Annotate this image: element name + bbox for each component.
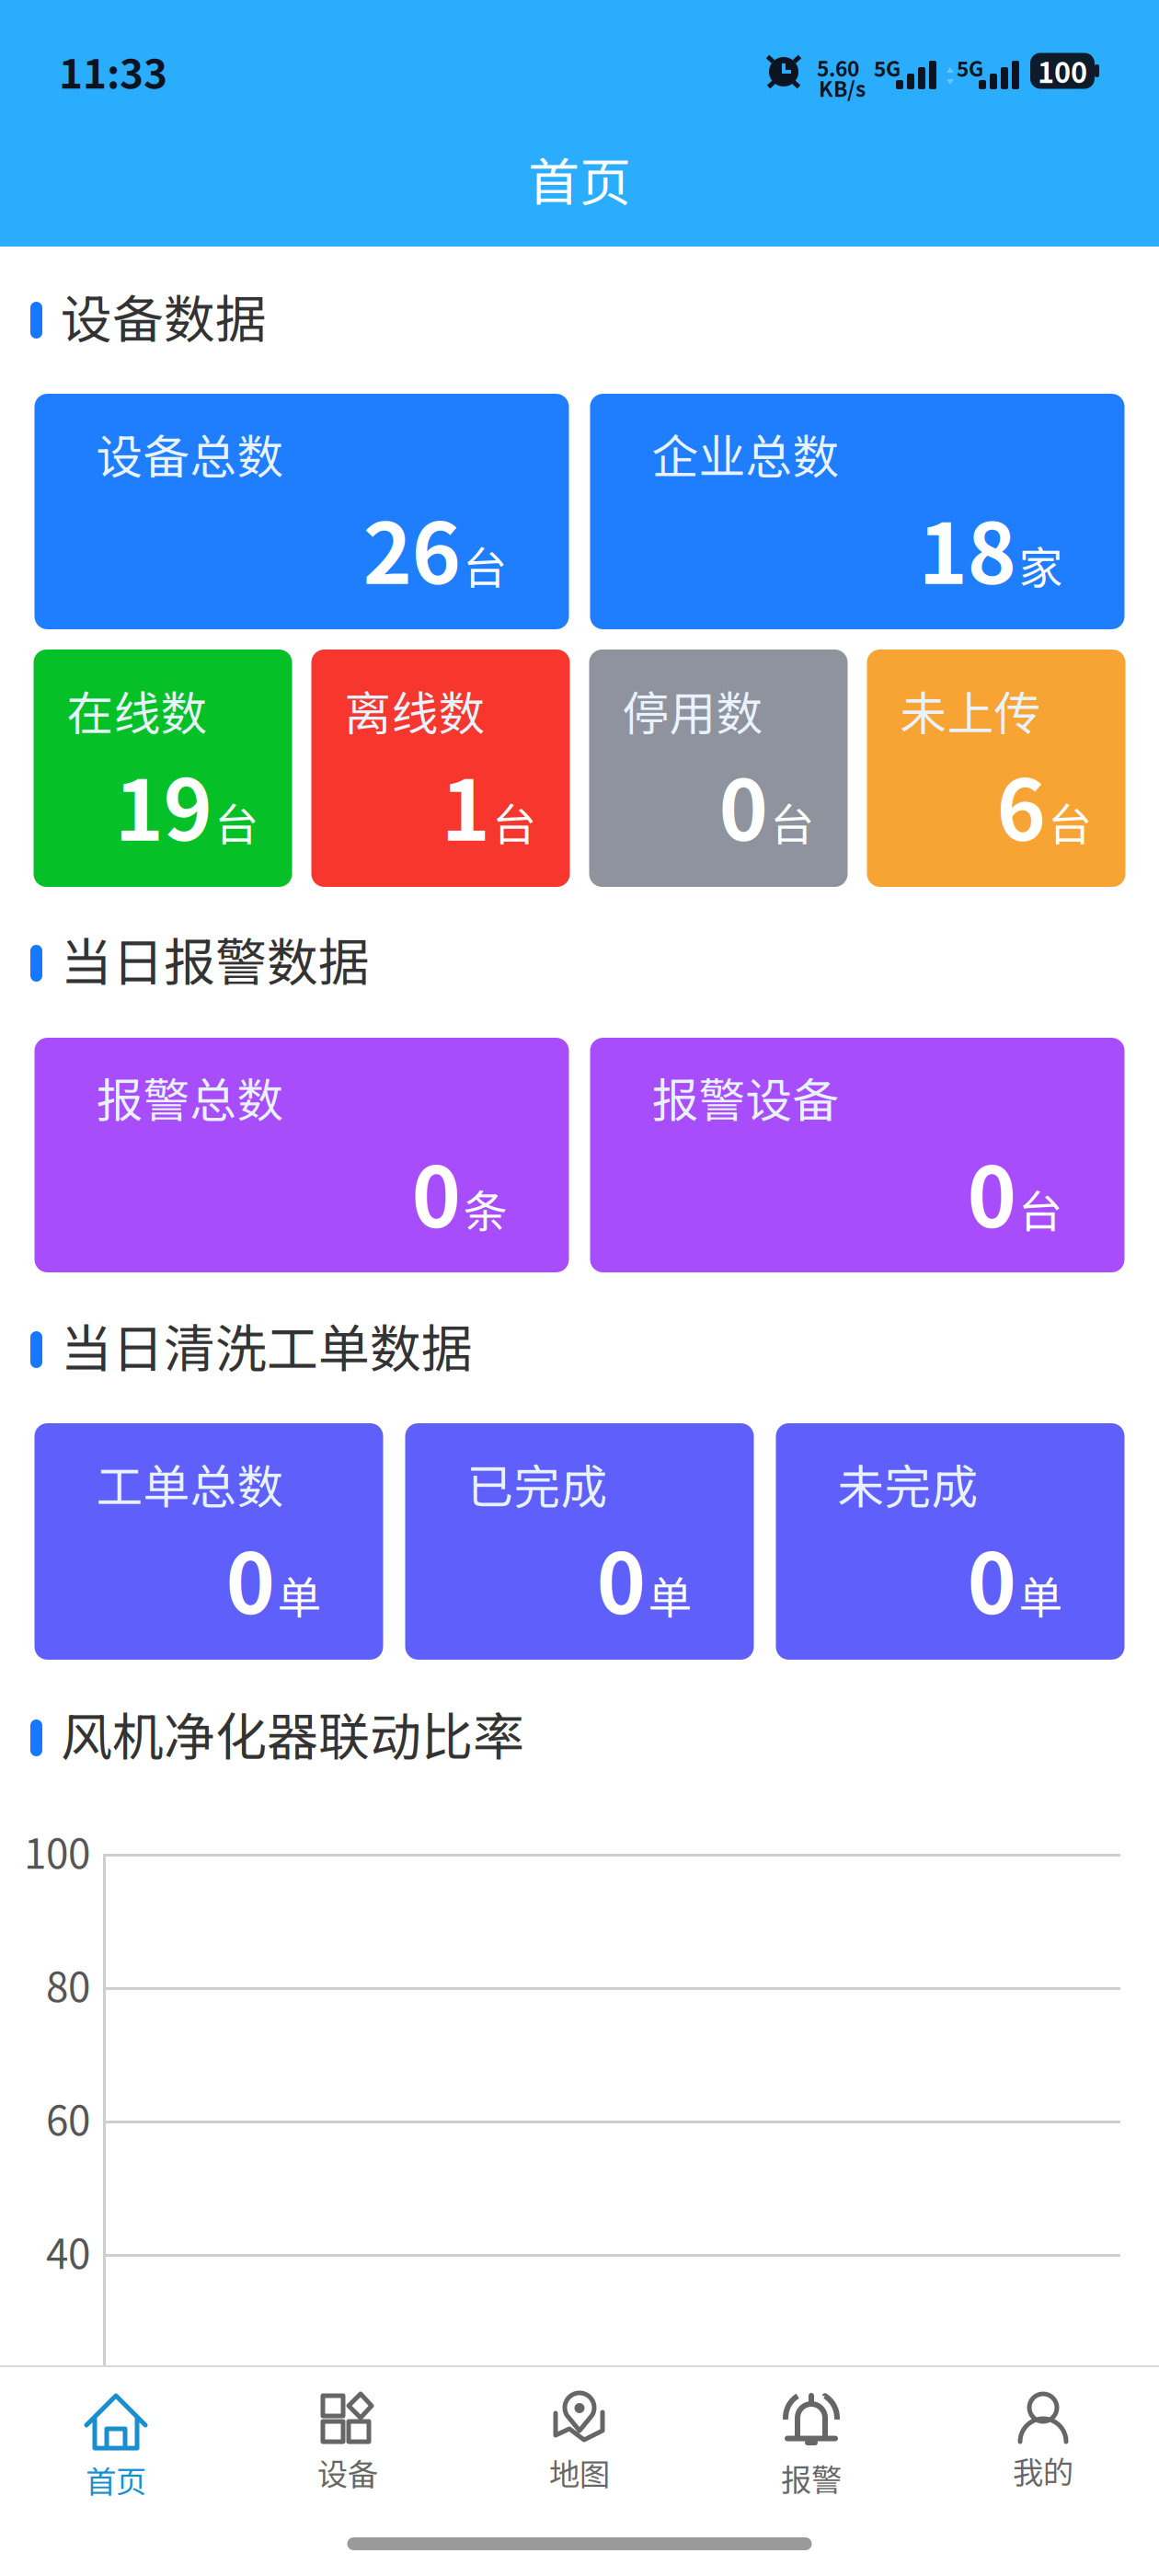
staticText: 工单总数: [96, 1450, 284, 1517]
staticText: 单: [277, 1563, 321, 1627]
button[interactable]: 设备: [232, 2367, 464, 2512]
staticText: 80: [46, 1955, 90, 2014]
staticText: 台: [770, 789, 815, 853]
staticText: 报警: [781, 2455, 842, 2500]
staticText: 条: [463, 1176, 507, 1240]
staticText: 当日清洗工单数据: [61, 1308, 473, 1382]
staticText: 设备数据: [61, 278, 267, 353]
button[interactable]: 地图: [464, 2367, 695, 2512]
button[interactable]: 停用数: [589, 650, 848, 887]
staticText: 18: [918, 487, 1016, 608]
staticText: 台: [463, 533, 507, 597]
staticText: 离线数: [344, 676, 485, 744]
staticText: 报警总数: [96, 1063, 284, 1131]
staticText: 台: [215, 789, 259, 853]
staticText: 企业总数: [652, 420, 839, 487]
button[interactable]: 已完成: [405, 1423, 754, 1660]
staticText: 未完成: [838, 1450, 978, 1517]
staticText: 100: [24, 1822, 90, 1880]
staticText: 6: [997, 744, 1045, 865]
staticText: 单: [1019, 1563, 1063, 1627]
staticText: 台: [1019, 1176, 1063, 1240]
staticText: 台: [1048, 789, 1092, 853]
staticText: 设备总数: [96, 420, 284, 487]
button[interactable]: 报警设备: [590, 1038, 1125, 1272]
button[interactable]: 报警: [695, 2367, 927, 2512]
staticText: 19: [115, 744, 212, 865]
button[interactable]: 设备总数: [34, 394, 569, 629]
staticText: 地图: [549, 2450, 610, 2494]
staticText: 100: [1038, 50, 1087, 91]
staticText: 单: [648, 1563, 692, 1627]
button[interactable]: 我的: [927, 2367, 1159, 2512]
staticText: 26: [363, 487, 460, 608]
button[interactable]: 在线数: [34, 650, 292, 887]
staticText: 11:33: [59, 41, 167, 100]
staticText: 首页: [86, 2457, 146, 2502]
staticText: 5G: [957, 52, 983, 83]
staticText: 风机净化器联动比率: [61, 1696, 524, 1771]
staticText: 台: [493, 789, 537, 853]
staticText: 60: [46, 2088, 90, 2147]
staticText: 1: [441, 744, 490, 865]
staticText: 5.60: [817, 52, 859, 83]
staticText: 0: [967, 1517, 1016, 1638]
staticText: 首页: [528, 141, 631, 216]
staticText: 停用数: [622, 676, 763, 744]
button[interactable]: 未上传: [867, 650, 1125, 887]
button[interactable]: 首页: [0, 2367, 232, 2512]
staticText: 0: [719, 744, 768, 865]
staticText: KB/s: [819, 73, 866, 103]
staticText: 0: [412, 1131, 460, 1251]
staticText: 家: [1019, 533, 1063, 597]
staticText: 当日报警数据: [61, 921, 370, 996]
staticText: 0: [226, 1517, 275, 1638]
button[interactable]: 离线数: [311, 650, 570, 887]
button[interactable]: 报警总数: [34, 1038, 569, 1272]
staticText: 在线数: [67, 676, 207, 744]
staticText: 报警设备: [652, 1063, 839, 1131]
staticText: 40: [46, 2222, 90, 2280]
button[interactable]: 未完成: [776, 1423, 1125, 1660]
staticText: 未上传: [900, 676, 1041, 744]
staticText: 0: [597, 1517, 645, 1638]
button[interactable]: 工单总数: [34, 1423, 383, 1660]
staticText: 0: [967, 1131, 1016, 1251]
staticText: 已完成: [467, 1450, 608, 1517]
staticText: 我的: [1013, 2448, 1073, 2493]
button[interactable]: 企业总数: [590, 394, 1125, 629]
staticText: 5G: [874, 52, 901, 83]
staticText: 设备: [317, 2450, 378, 2494]
